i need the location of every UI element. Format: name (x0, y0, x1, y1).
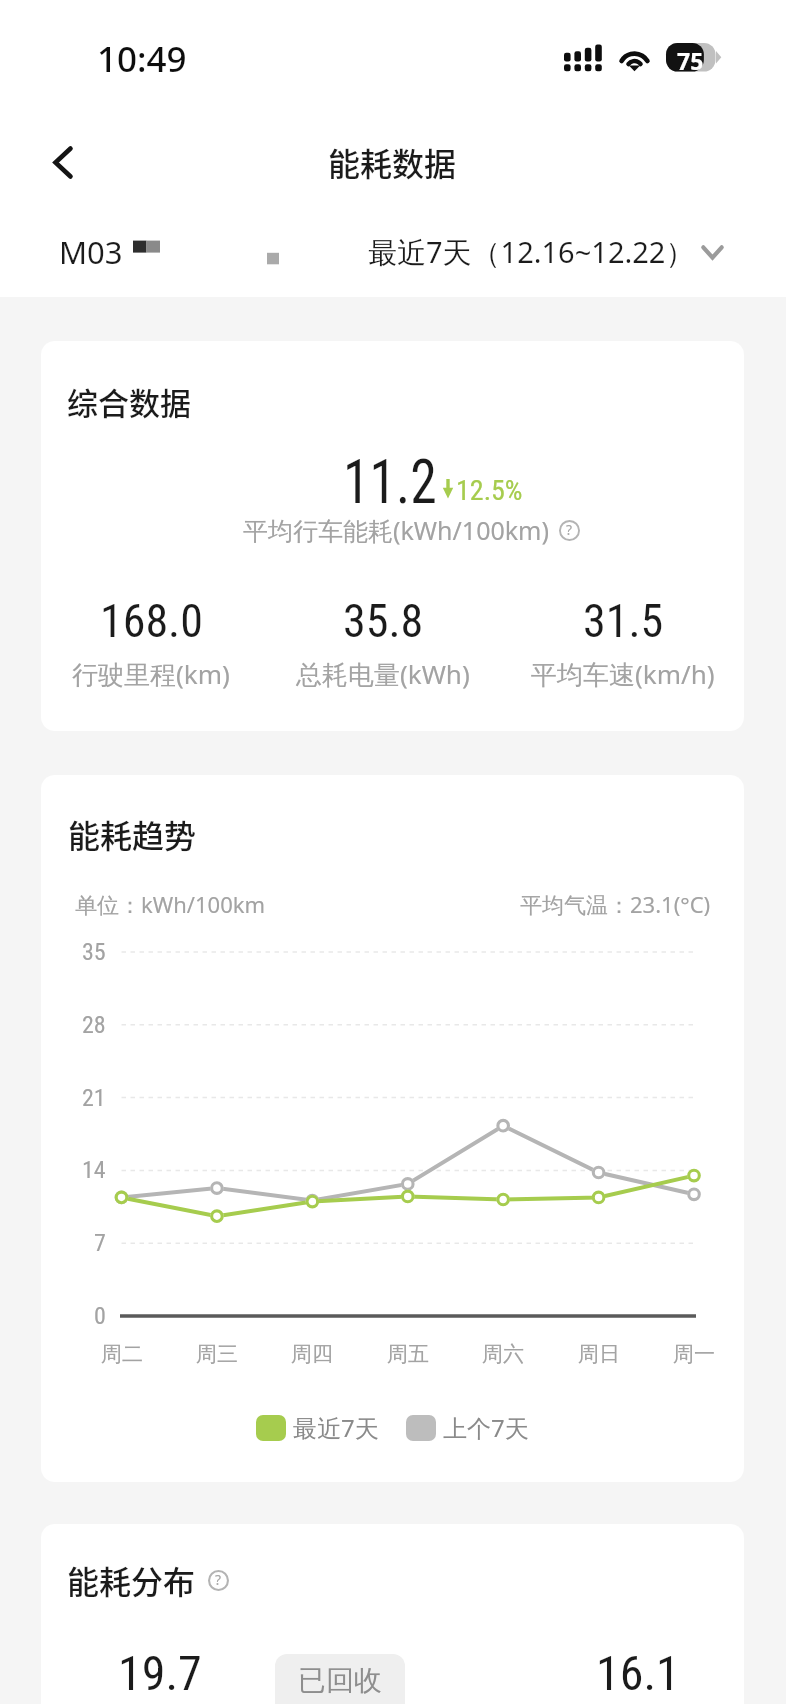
staticText: 75 (677, 45, 704, 75)
staticText: ? (215, 1570, 222, 1589)
staticText: 31.5 (583, 594, 664, 648)
staticText: 最近7天 (293, 1411, 379, 1444)
staticText: 12.5% (456, 474, 523, 507)
button[interactable]: Back (32, 131, 94, 193)
staticText: 周一 (673, 1341, 715, 1367)
staticText: 上个7天 (443, 1411, 529, 1444)
staticText: 平均行车能耗(kWh/100km) (243, 513, 549, 547)
staticText: 单位：kWh/100km (75, 889, 266, 919)
staticText: 35 (82, 938, 106, 966)
staticText: 能耗分布 (67, 1557, 196, 1603)
staticText: 周四 (291, 1341, 333, 1367)
staticText: 周日 (578, 1341, 620, 1367)
staticText: 19.7 (118, 1645, 202, 1701)
staticText: 能耗数据 (328, 139, 457, 185)
staticText: 总耗电量(kWh) (296, 656, 470, 692)
staticText: 能耗趋势 (68, 811, 197, 857)
staticText: 综合数据 (67, 379, 191, 424)
staticText: 168.0 (100, 594, 203, 648)
staticText: 21 (82, 1084, 106, 1112)
staticText: 行驶里程(km) (72, 656, 230, 692)
staticText: 周二 (101, 1341, 143, 1367)
staticText: 10:49 (97, 35, 187, 83)
staticText: 14 (82, 1156, 106, 1184)
staticText: 平均气温：23.1(°C) (520, 889, 711, 919)
staticText: 周三 (196, 1341, 238, 1367)
staticText: 28 (82, 1011, 106, 1039)
staticText: 11.2 (343, 446, 437, 517)
staticText: 周六 (482, 1341, 524, 1367)
staticText: ? (566, 520, 573, 539)
staticText: 7 (94, 1229, 106, 1257)
staticText: 0 (94, 1302, 106, 1330)
button[interactable]: M03 (59, 228, 280, 276)
staticText: 周五 (387, 1341, 429, 1367)
staticText: 最近7天（12.16~12.22） (368, 232, 695, 272)
button[interactable]: 最近7天（12.16~12.22） (368, 228, 724, 276)
staticText: M03 (59, 231, 123, 273)
staticText: 平均车速(km/h) (531, 656, 715, 692)
staticText: 35.8 (343, 594, 424, 648)
staticText: 16.1 (596, 1645, 680, 1701)
staticText: 已回收 (298, 1663, 382, 1698)
